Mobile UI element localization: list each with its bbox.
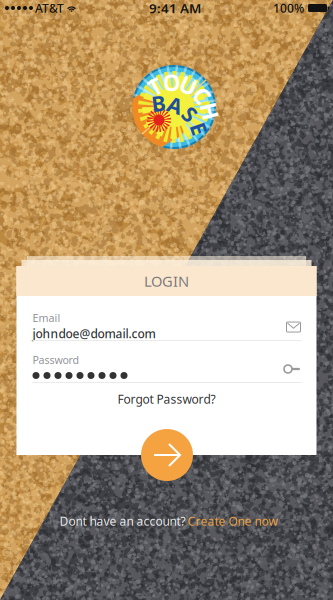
staticText: 9:41 AM (149, 0, 201, 17)
button[interactable]: Forgot Password? (16, 383, 316, 415)
button[interactable]: Sign in (141, 429, 193, 481)
staticText: S (184, 100, 196, 128)
staticText: C (195, 80, 210, 111)
staticText: B (151, 89, 165, 117)
staticText: Email (32, 311, 60, 325)
staticText: AT&T (35, 0, 64, 16)
staticText: 100% (273, 0, 304, 16)
button[interactable]: Create One now (187, 513, 277, 529)
staticText: H (201, 96, 218, 126)
staticText: Dont have an account? (59, 513, 185, 529)
staticText: E (193, 114, 205, 143)
staticText: Create One now (187, 513, 277, 529)
staticText: Forgot Password? (117, 391, 215, 407)
staticText: U (180, 70, 197, 100)
staticText: A (168, 91, 183, 119)
staticText: O (163, 67, 181, 97)
staticText: johndoe@domail.com (32, 325, 155, 341)
staticText: Password (32, 353, 79, 367)
staticText: LOGIN (144, 271, 189, 291)
staticText: T (149, 71, 162, 101)
